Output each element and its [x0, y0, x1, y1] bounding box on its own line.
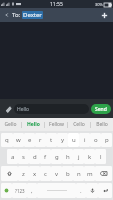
button[interactable]: Hello — [14, 104, 89, 114]
staticText: m — [87, 170, 93, 178]
button[interactable]: u — [68, 133, 79, 147]
button[interactable]: y — [57, 133, 68, 147]
button[interactable]: Backspace — [95, 166, 112, 181]
staticText: l — [100, 153, 102, 161]
other: Backspace — [100, 171, 107, 176]
staticText: k — [88, 153, 92, 161]
button[interactable]: Back — [3, 11, 11, 19]
button[interactable]: Attach — [2, 103, 14, 115]
button[interactable]: h — [62, 149, 73, 164]
button[interactable]: z — [18, 166, 29, 181]
button[interactable]: j — [73, 149, 84, 164]
button[interactable]: l — [95, 149, 106, 164]
staticText: e — [28, 136, 32, 144]
staticText: y — [61, 136, 65, 144]
button[interactable]: Send — [91, 104, 111, 114]
staticText: b — [66, 170, 70, 178]
button[interactable]: Voice input — [86, 183, 98, 198]
button[interactable] — [37, 183, 76, 198]
button[interactable]: Gello — [0, 118, 21, 131]
button[interactable]: d — [29, 149, 40, 164]
staticText: d — [33, 153, 37, 161]
button[interactable]: m — [84, 166, 95, 181]
button[interactable]: New message — [98, 9, 110, 21]
staticText: Cello — [73, 121, 85, 128]
staticText: . — [80, 187, 82, 195]
button[interactable]: ?123 — [12, 183, 27, 198]
other: Enter — [103, 188, 108, 193]
button[interactable]: g — [51, 149, 62, 164]
button[interactable]: e — [24, 133, 35, 147]
staticText: 11:55 — [50, 1, 63, 8]
staticText: a — [11, 153, 15, 161]
other: Shift — [7, 171, 12, 176]
button[interactable]: p — [101, 133, 112, 147]
button[interactable]: , — [27, 183, 37, 198]
staticText: , — [31, 187, 33, 195]
button[interactable]: x — [29, 166, 40, 181]
staticText: x — [33, 170, 37, 178]
button[interactable]: Change keyboard — [1, 183, 12, 198]
staticText: u — [72, 136, 76, 144]
staticText: w — [16, 136, 21, 144]
button[interactable]: q — [1, 133, 13, 147]
button[interactable]: s — [18, 149, 29, 164]
button[interactable]: k — [84, 149, 95, 164]
staticText: Bello — [96, 121, 108, 128]
staticText: q — [5, 136, 9, 144]
button[interactable]: Bello — [91, 118, 113, 131]
staticText: Send — [95, 106, 107, 113]
other: Voice input — [90, 188, 95, 193]
button[interactable]: o — [90, 133, 101, 147]
button[interactable]: t — [46, 133, 57, 147]
button[interactable]: Shift — [1, 166, 18, 181]
staticText: g — [55, 153, 59, 161]
button[interactable]: Enter — [98, 183, 112, 198]
staticText: ?123 — [15, 188, 25, 194]
staticText: i — [84, 136, 86, 144]
staticText: n — [77, 170, 81, 178]
staticText: r — [39, 136, 42, 144]
button[interactable]: To: — [12, 11, 98, 19]
staticText: Hello — [27, 121, 40, 128]
staticText: h — [66, 153, 70, 161]
button[interactable]: Hello — [22, 118, 44, 131]
button[interactable]: . — [76, 183, 86, 198]
button[interactable]: f — [40, 149, 51, 164]
staticText: t — [50, 136, 53, 144]
staticText: p — [105, 136, 109, 144]
staticText: c — [44, 170, 47, 178]
staticText: z — [22, 170, 25, 178]
staticText: Gello — [4, 121, 17, 128]
button[interactable]: b — [62, 166, 73, 181]
button[interactable]: i — [79, 133, 90, 147]
staticText: Dexter — [23, 11, 42, 19]
staticText: Hello — [17, 106, 30, 113]
staticText: 30% — [95, 2, 103, 7]
button[interactable]: Fellow — [45, 118, 67, 131]
staticText: s — [22, 153, 25, 161]
button[interactable]: n — [73, 166, 84, 181]
staticText: o — [94, 136, 98, 144]
button[interactable]: a — [7, 149, 18, 164]
button[interactable]: Cello — [68, 118, 90, 131]
staticText: Fellow — [49, 121, 64, 128]
staticText: To: — [12, 11, 22, 19]
other: Change keyboard — [4, 188, 9, 193]
button[interactable]: w — [13, 133, 24, 147]
button[interactable]: v — [51, 166, 62, 181]
button[interactable]: r — [35, 133, 46, 147]
button[interactable]: c — [40, 166, 51, 181]
staticText: j — [78, 153, 80, 161]
staticText: f — [44, 153, 47, 161]
staticText: v — [55, 170, 59, 178]
